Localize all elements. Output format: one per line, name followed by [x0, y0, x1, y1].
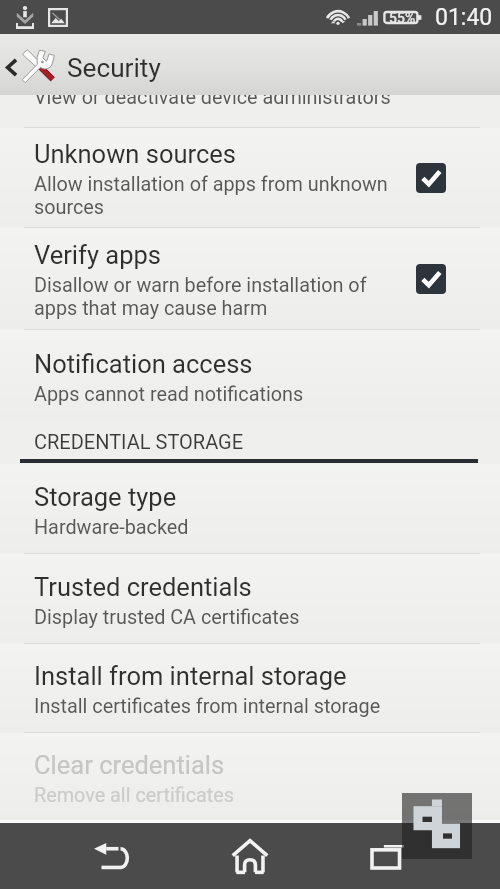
staticText: Disallow or warn before installation of …	[34, 274, 402, 320]
staticText: Install from internal storage	[34, 662, 347, 691]
button[interactable]: Small apps	[402, 793, 472, 859]
staticText: Storage type	[34, 483, 177, 512]
other: Navigate up	[5, 58, 17, 77]
staticText: CREDENTIAL STORAGE	[34, 430, 244, 453]
staticText: 55%	[389, 10, 416, 26]
button[interactable]: Unknown sources	[0, 128, 500, 227]
staticText: Verify apps	[34, 241, 161, 270]
staticText: Apps cannot read notifications	[34, 383, 304, 406]
staticText: Remove all certificates	[34, 784, 235, 807]
button[interactable]: Navigate up	[0, 34, 500, 95]
button[interactable]: Toggle	[416, 163, 446, 193]
staticText: Install certificates from internal stora…	[34, 695, 381, 718]
button[interactable]: Notification access	[0, 330, 500, 421]
staticText: Unknown sources	[34, 140, 236, 169]
button[interactable]: Install from internal storage	[0, 644, 500, 732]
button[interactable]: Back	[66, 823, 156, 889]
staticText: Allow installation of apps from unknown …	[34, 173, 402, 219]
staticText: Security	[67, 53, 161, 84]
staticText: Clear credentials	[34, 751, 225, 780]
staticText: View or deactivate device administrators	[34, 86, 391, 109]
other: Download	[16, 6, 34, 29]
button[interactable]: Trusted credentials	[0, 554, 500, 643]
button[interactable]: Home	[205, 823, 295, 889]
staticText: Notification access	[34, 350, 253, 379]
button[interactable]: Recent apps	[343, 823, 433, 889]
button[interactable]: Toggle	[416, 264, 446, 294]
button[interactable]: Clear credentials	[0, 733, 500, 821]
button[interactable]: Storage type	[0, 464, 500, 553]
staticText: 01:40	[435, 4, 493, 31]
staticText: Display trusted CA certificates	[34, 606, 300, 629]
button[interactable]: Verify apps	[0, 228, 500, 329]
staticText: Hardware-backed	[34, 516, 189, 539]
staticText: Trusted credentials	[34, 573, 252, 602]
other: Screenshot captured	[48, 8, 68, 27]
